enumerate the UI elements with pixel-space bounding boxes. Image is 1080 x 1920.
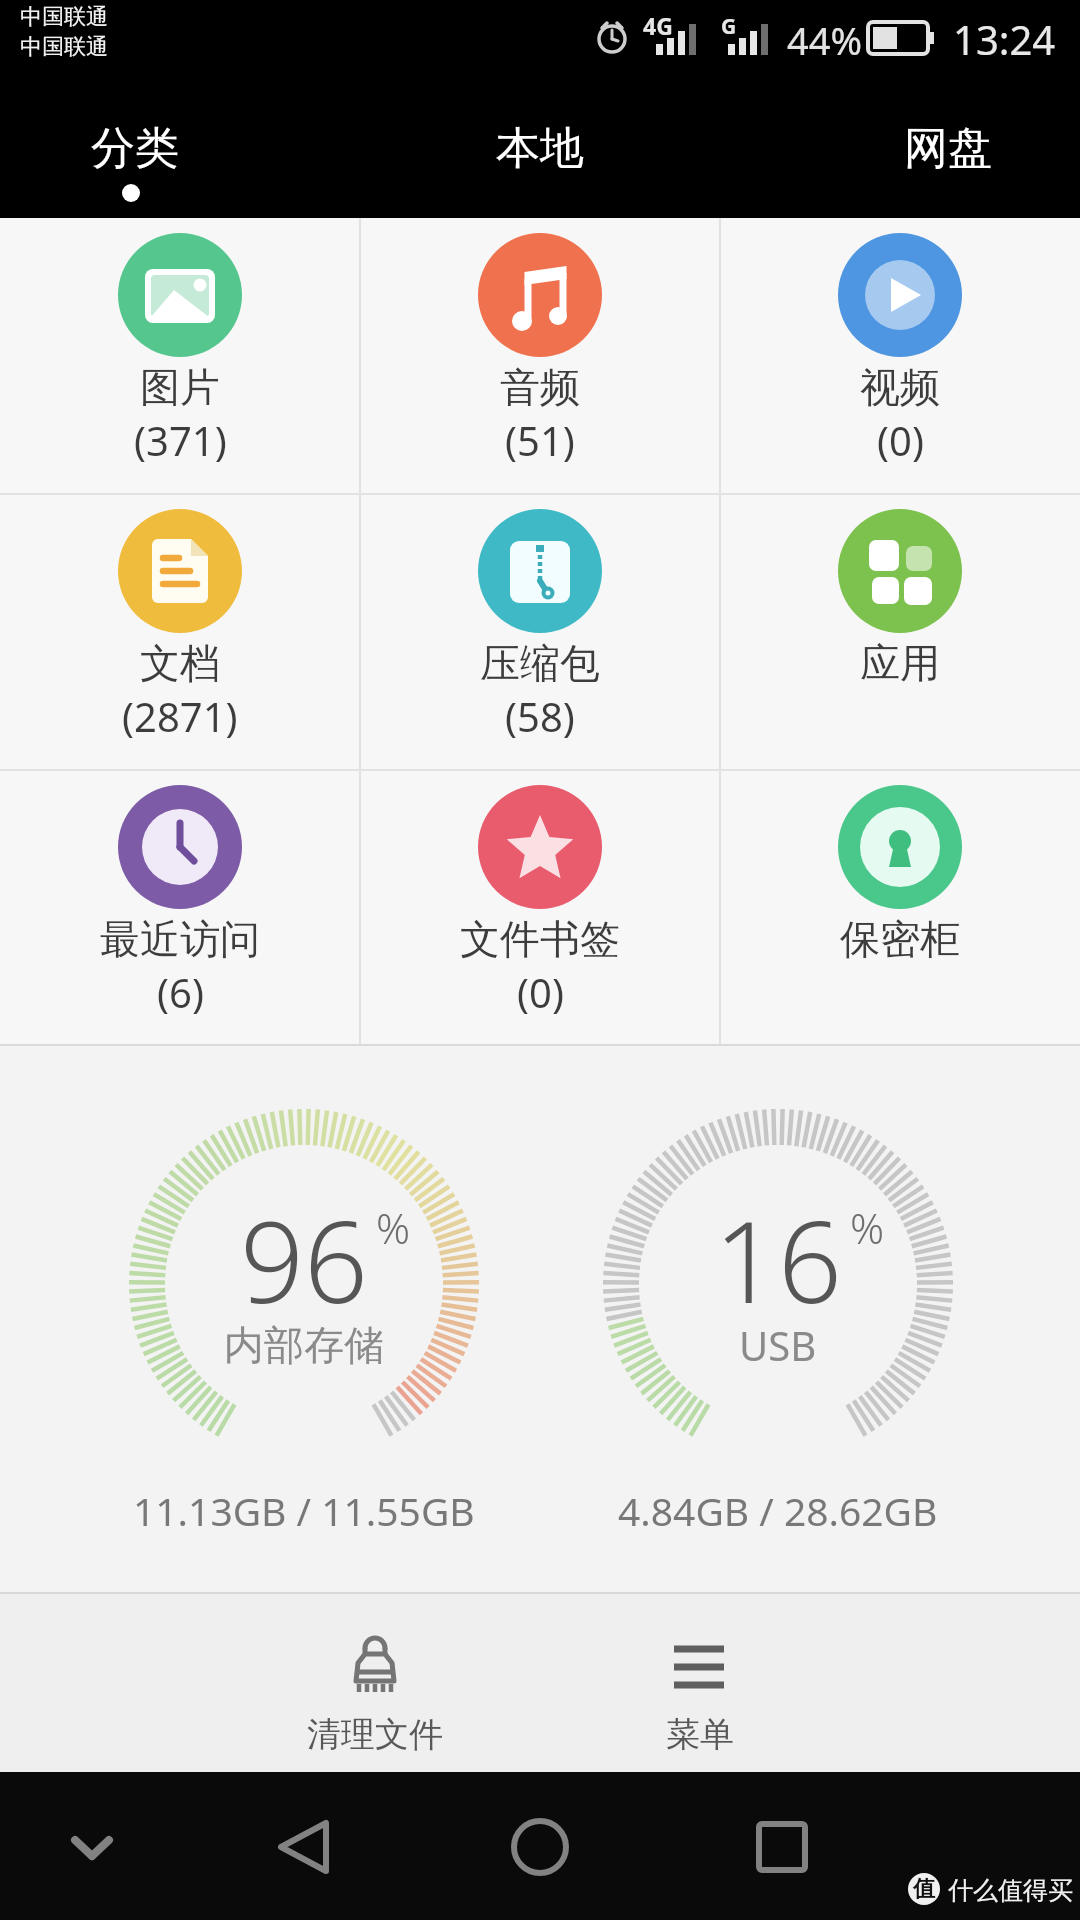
staticText: (0) bbox=[877, 413, 924, 463]
button[interactable]: 图片 bbox=[0, 218, 360, 494]
button[interactable]: 音频 bbox=[360, 218, 720, 494]
staticText: 4G bbox=[643, 10, 673, 40]
staticText: 压缩包 bbox=[480, 638, 600, 688]
staticText: 视频 bbox=[860, 362, 940, 412]
button[interactable]: 压缩包 bbox=[360, 494, 720, 770]
button[interactable] bbox=[40, 1812, 140, 1882]
staticText: 内部存储 bbox=[224, 1320, 384, 1370]
staticText: 分类 bbox=[91, 121, 179, 176]
button[interactable]: 最近访问 bbox=[0, 770, 360, 1046]
button[interactable]: 本地 bbox=[465, 118, 615, 178]
staticText: 清理文件 bbox=[307, 1713, 443, 1756]
button[interactable]: 视频 bbox=[720, 218, 1080, 494]
button[interactable]: 应用 bbox=[720, 494, 1080, 770]
staticText: (0) bbox=[517, 965, 564, 1015]
staticText: 最近访问 bbox=[100, 914, 260, 964]
staticText: 文件书签 bbox=[460, 914, 620, 964]
staticText: 16 bbox=[714, 1183, 842, 1323]
button[interactable]: 文档 bbox=[0, 494, 360, 770]
staticText: (51) bbox=[505, 413, 575, 463]
staticText: % bbox=[850, 1199, 885, 1256]
button[interactable]: 文件书签 bbox=[360, 770, 720, 1046]
button[interactable] bbox=[732, 1812, 832, 1882]
staticText: 中国联通 bbox=[20, 3, 108, 31]
staticText: 什么值得买 bbox=[948, 1875, 1073, 1906]
button[interactable]: 清理文件 bbox=[255, 1623, 495, 1763]
staticText: % bbox=[376, 1199, 411, 1256]
button[interactable] bbox=[490, 1812, 590, 1882]
staticText: (58) bbox=[505, 689, 575, 739]
button[interactable]: 网盘 bbox=[873, 118, 1023, 178]
staticText: 网盘 bbox=[904, 121, 992, 176]
staticText: 保密柜 bbox=[840, 914, 960, 964]
staticText: 本地 bbox=[496, 121, 584, 176]
button[interactable] bbox=[255, 1812, 355, 1882]
staticText: 44% bbox=[787, 14, 863, 60]
staticText: 音频 bbox=[500, 362, 580, 412]
staticText: 文档 bbox=[140, 638, 220, 688]
staticText: 菜单 bbox=[666, 1713, 734, 1756]
staticText: 13:24 bbox=[953, 12, 1056, 62]
staticText: 应用 bbox=[860, 638, 940, 688]
button[interactable]: 分类 bbox=[60, 118, 210, 178]
staticText: G bbox=[721, 12, 737, 40]
staticText: 值 bbox=[913, 1875, 935, 1903]
staticText: (6) bbox=[157, 965, 204, 1015]
button[interactable]: 菜单 bbox=[580, 1623, 820, 1763]
staticText: USB bbox=[739, 1318, 817, 1372]
staticText: 11.13GB / 11.55GB bbox=[133, 1484, 475, 1537]
staticText: 4.84GB / 28.62GB bbox=[618, 1484, 938, 1537]
button[interactable]: 保密柜 bbox=[720, 770, 1080, 1046]
staticText: 96 bbox=[240, 1183, 368, 1323]
staticText: 中国联通 bbox=[20, 33, 108, 61]
staticText: (2871) bbox=[122, 689, 238, 739]
staticText: (371) bbox=[134, 413, 227, 463]
staticText: 图片 bbox=[140, 362, 220, 412]
